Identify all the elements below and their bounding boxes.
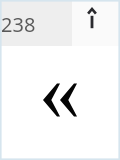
button[interactable]: 238 bbox=[0, 0, 72, 46]
button[interactable]: Scroll to top bbox=[72, 0, 120, 46]
staticText: 238 bbox=[1, 11, 36, 38]
